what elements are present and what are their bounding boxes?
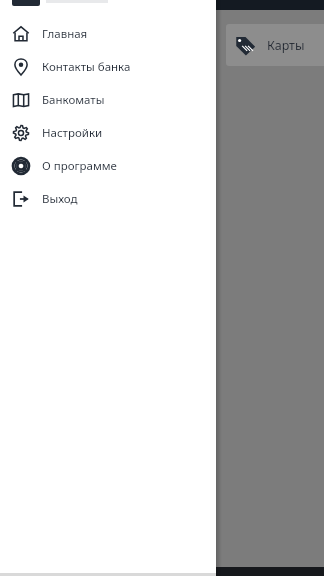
button[interactable]: Банкоматы (0, 83, 216, 116)
button[interactable]: Выход (0, 182, 216, 215)
button[interactable]: Настройки (0, 116, 216, 149)
button[interactable]: Главная (0, 17, 216, 50)
button[interactable]: О программе (0, 149, 216, 182)
button[interactable]: Карты (226, 24, 324, 66)
staticText: Контакты банка (42, 59, 131, 75)
staticText: Выход (42, 191, 78, 207)
staticText: Настройки (42, 125, 103, 141)
staticText: Банкоматы (42, 92, 105, 108)
staticText: О программе (42, 158, 117, 174)
staticText: Главная (42, 26, 88, 42)
staticText: Карты (267, 37, 305, 54)
button[interactable]: Контакты банка (0, 50, 216, 83)
